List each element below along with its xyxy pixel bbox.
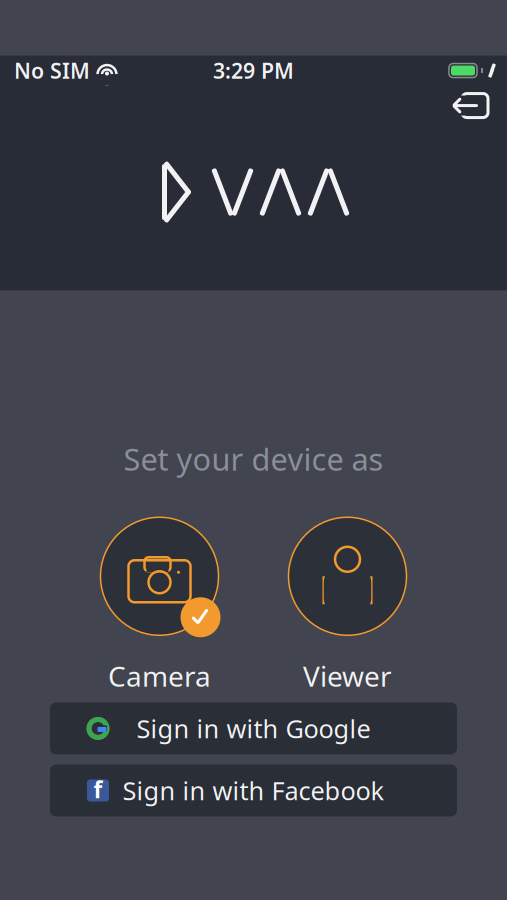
staticText: Set your device as bbox=[123, 438, 383, 479]
button[interactable]: Sign in with Google bbox=[50, 702, 457, 754]
staticText: Sign in with Google bbox=[136, 712, 370, 745]
button[interactable]: Log out bbox=[447, 85, 507, 121]
staticText: Camera bbox=[108, 657, 211, 694]
staticText: 3:29 PM bbox=[213, 56, 294, 85]
staticText: f bbox=[93, 774, 102, 804]
button[interactable]: f bbox=[50, 764, 457, 816]
button[interactable]: Viewer bbox=[282, 511, 412, 694]
staticText: Viewer bbox=[303, 657, 392, 694]
staticText: No SIM bbox=[14, 56, 90, 85]
staticText: Sign in with Facebook bbox=[122, 774, 384, 807]
button[interactable]: Camera bbox=[94, 511, 224, 694]
